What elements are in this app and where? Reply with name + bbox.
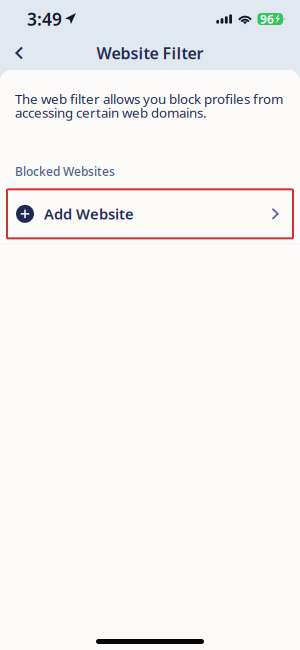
staticText: The web filter allows you block profiles… (15, 90, 283, 121)
staticText: Website Filter (96, 42, 203, 64)
button[interactable]: Back (0, 37, 36, 68)
staticText: Add Website (44, 204, 134, 224)
staticText: 96 (260, 11, 274, 27)
staticText: 3:49 (27, 7, 62, 30)
staticText: Blocked Websites (15, 163, 115, 179)
button[interactable]: Add Website (7, 189, 293, 238)
